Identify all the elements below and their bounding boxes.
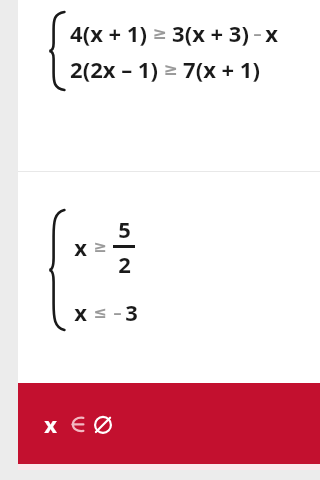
staticText: 3 (125, 297, 138, 327)
staticText: – (113, 301, 122, 323)
staticText: 3(x + 3) (172, 18, 249, 48)
staticText: ≥ (152, 23, 167, 43)
staticText: 5 (118, 214, 131, 244)
staticText: x (74, 297, 87, 327)
staticText: 2 (118, 249, 131, 279)
staticText: x (265, 18, 278, 48)
button[interactable]: x (18, 383, 320, 464)
staticText: ≤ (93, 303, 107, 322)
button[interactable]: 4(x + 1) (18, 0, 320, 171)
staticText: x (44, 409, 57, 439)
staticText: ≥ (163, 59, 178, 79)
staticText: x (74, 232, 87, 262)
button[interactable]: x (18, 172, 320, 382)
staticText: – (253, 22, 262, 44)
staticText: 2(2x – 1) (70, 54, 158, 84)
staticText: ≥ (93, 237, 107, 256)
other: element of (65, 414, 85, 434)
other: empty set (92, 413, 114, 435)
staticText: 4(x + 1) (70, 18, 147, 48)
staticText: 7(x + 1) (183, 54, 260, 84)
